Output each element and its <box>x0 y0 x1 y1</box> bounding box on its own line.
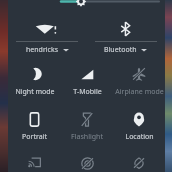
button[interactable]: Location <box>113 107 165 142</box>
staticText: hendricks <box>26 45 59 55</box>
button[interactable]: Cast <box>8 153 61 168</box>
staticText: Airplane mode <box>115 87 164 97</box>
staticText: Night mode <box>15 87 55 97</box>
button[interactable]: Wi-Fi <box>8 18 86 55</box>
button[interactable]: Airplane mode <box>113 62 165 97</box>
staticText: T-Mobile <box>73 87 102 97</box>
button[interactable]: NFC <box>61 153 113 170</box>
button[interactable]: Bluetooth <box>86 18 165 55</box>
staticText: Location <box>125 132 154 142</box>
staticText: Flashlight <box>71 132 103 142</box>
button[interactable]: Flashlight <box>61 107 113 142</box>
staticText: Portrait <box>22 132 47 142</box>
button[interactable]: T-Mobile <box>61 62 113 97</box>
staticText: Bluetooth <box>104 45 137 55</box>
button[interactable]: Brightness <box>8 0 165 11</box>
button[interactable]: Data Saver <box>113 153 165 169</box>
button[interactable]: Portrait <box>8 107 61 142</box>
button[interactable]: Night mode <box>8 62 61 97</box>
